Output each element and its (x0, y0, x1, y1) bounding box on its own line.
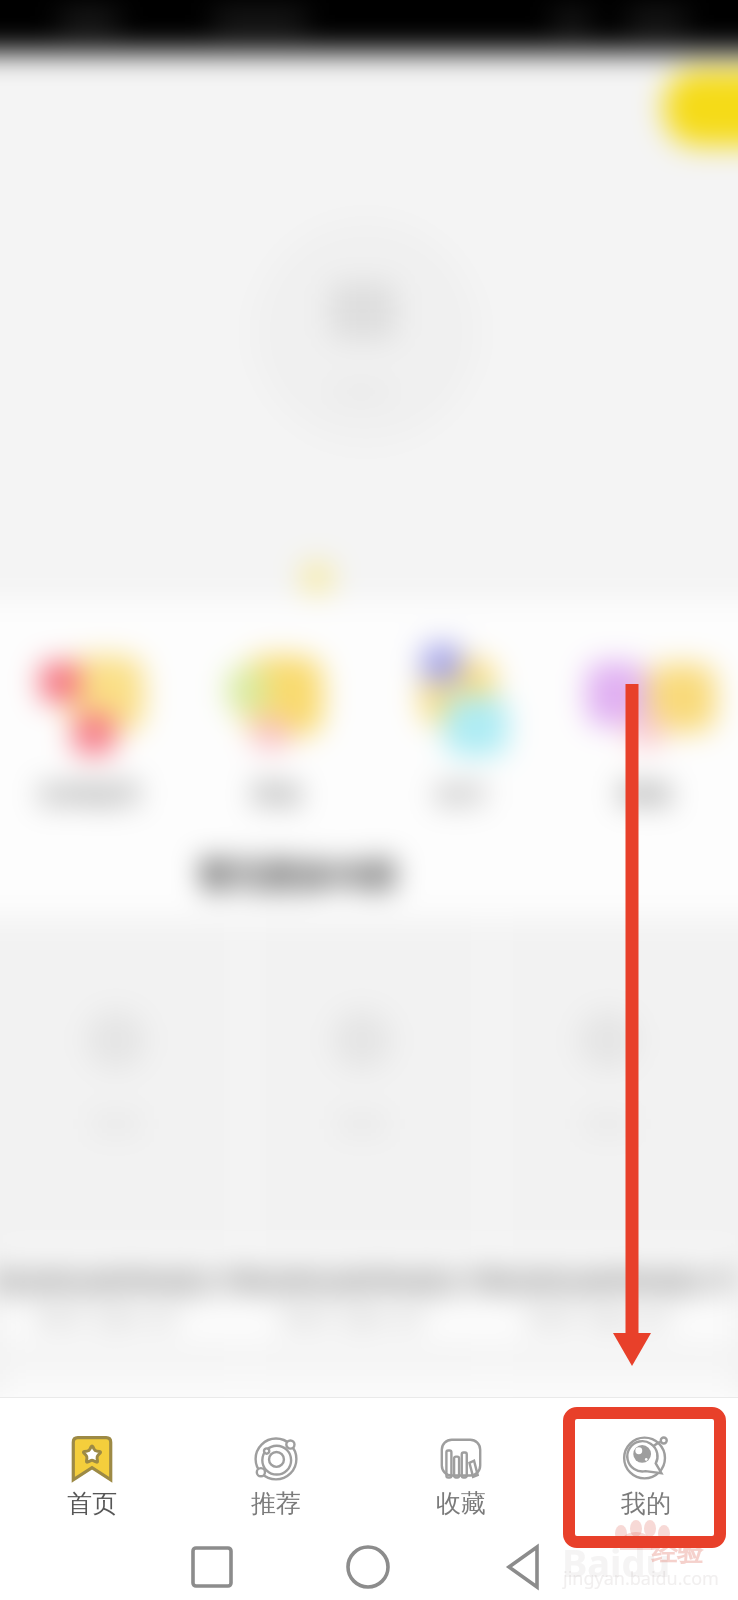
button[interactable]: 首页 (0, 1400, 184, 1533)
staticText: Baidu (562, 1536, 671, 1588)
button[interactable]: Back (487, 1534, 559, 1600)
button[interactable]: 收藏 (368, 1400, 553, 1533)
staticText: 精选商品推荐标题文字 (467, 1266, 738, 1297)
staticText: 精选商品推荐标题文字 (221, 1266, 511, 1297)
staticText: Baidu (560, 1534, 669, 1586)
staticText: 精选商品推荐标题文字 (0, 1266, 265, 1297)
staticText: 暂无更多内容 (179, 855, 417, 897)
staticText: ¥39.9 已售1.2万 (0, 1306, 250, 1332)
staticText: 经验 (651, 1536, 703, 1569)
staticText: 购物 (599, 778, 691, 811)
staticText: 生鲜超市 (18, 778, 162, 811)
staticText: ¥39.9 已售1.2万 (455, 1306, 738, 1332)
staticText: 首页 (67, 1488, 117, 1519)
staticText: 美食 (231, 778, 323, 811)
button[interactable]: Home (332, 1534, 404, 1600)
staticText: jingyan.baidu.com (563, 1566, 719, 1591)
other: 收藏 (437, 1434, 485, 1482)
staticText: 出行 (415, 778, 507, 811)
other: 我的 (622, 1434, 670, 1482)
button[interactable]: 我的 (553, 1400, 738, 1533)
staticText: 收藏 (436, 1488, 486, 1519)
staticText: 推荐 (251, 1488, 301, 1519)
staticText: 我的 (621, 1488, 671, 1519)
staticText: ¥39.9 已售1.2万 (209, 1306, 496, 1332)
other: 推荐 (252, 1434, 300, 1482)
other: 首页 (68, 1434, 116, 1482)
button[interactable]: 推荐 (184, 1400, 368, 1533)
button[interactable]: Recent apps (176, 1534, 248, 1600)
